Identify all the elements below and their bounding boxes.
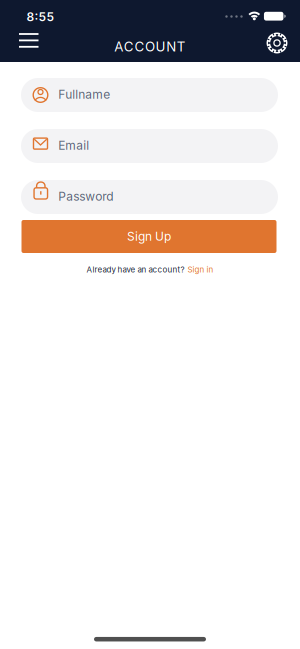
staticText: Sign Up	[127, 229, 171, 244]
staticText: Password	[58, 189, 113, 204]
staticText: 8:55	[26, 10, 54, 24]
staticText: Email	[58, 138, 89, 153]
staticText: Fullname	[58, 87, 110, 102]
staticText: Already have an account?	[86, 265, 184, 274]
staticText: ACCOUNT	[114, 39, 186, 54]
staticText: Sign in	[187, 265, 213, 274]
